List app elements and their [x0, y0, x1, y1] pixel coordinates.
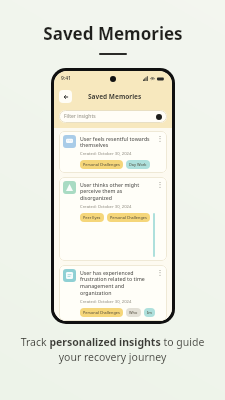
- staticText: Day Work: [129, 162, 147, 167]
- button[interactable]: Filter insights: [59, 110, 167, 123]
- staticText: Created: October 30, 2024: [80, 151, 132, 157]
- staticText: Saved Memories: [88, 92, 142, 101]
- button[interactable]: User thinks other might perceive them as…: [59, 177, 167, 261]
- other: Filter: [156, 114, 162, 120]
- button[interactable]: Imperiodic: [144, 308, 155, 317]
- staticText: Filter insights: [64, 113, 96, 120]
- button[interactable]: Personal Challenges: [80, 160, 123, 169]
- staticText: Personal Challenges: [83, 310, 120, 315]
- staticText: Created: October 30, 2024: [80, 299, 132, 305]
- staticText: Saved Memories: [43, 22, 183, 45]
- staticText: Personal Challenges: [110, 215, 147, 220]
- staticText: Track personalized insights to guide you…: [16, 335, 209, 364]
- staticText: Personal Challenges: [83, 162, 120, 167]
- staticText: User feels resentful towards themselves: [80, 135, 155, 149]
- staticText: User has experienced frustration related…: [80, 269, 155, 297]
- button[interactable]: Back: [59, 90, 72, 103]
- button[interactable]: More options: [157, 181, 163, 194]
- button[interactable]: User feels resentful towards themselves: [59, 131, 167, 173]
- staticText: User thinks other might perceive them as…: [80, 181, 155, 202]
- staticText: Peer Eyes: [83, 215, 101, 220]
- button[interactable]: Personal Challenges: [80, 308, 123, 317]
- button[interactable]: User has experienced frustration related…: [59, 265, 167, 321]
- button[interactable]: More options: [157, 135, 163, 148]
- button[interactable]: Personal Challenges: [107, 213, 150, 222]
- staticText: Imperiodic: [147, 310, 152, 315]
- staticText: Created: October 30, 2024: [80, 204, 132, 210]
- button[interactable]: More options: [157, 269, 163, 282]
- button[interactable]: Day Work: [126, 160, 150, 169]
- button[interactable]: Peer Eyes: [80, 213, 104, 222]
- staticText: 9:41: [61, 75, 71, 82]
- button[interactable]: Who: [126, 308, 141, 317]
- button[interactable]: Open Plan: [153, 213, 155, 257]
- staticText: Who: [129, 310, 138, 315]
